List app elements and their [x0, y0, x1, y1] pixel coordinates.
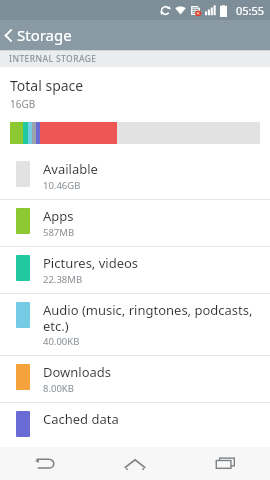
staticText: Cached data [43, 410, 119, 428]
button[interactable]: Pictures, videos [0, 247, 270, 293]
button[interactable]: Downloads [0, 356, 270, 402]
staticText: Storage [17, 25, 72, 45]
staticText: 22.38MB [43, 273, 83, 286]
button[interactable]: Home [90, 447, 180, 480]
staticText: Downloads [43, 363, 112, 381]
staticText: 40.00KB [43, 335, 80, 348]
staticText: Total space [10, 76, 84, 95]
staticText: Apps [43, 207, 74, 225]
button[interactable]: Total space [0, 67, 270, 111]
staticText: Pictures, videos [43, 254, 139, 272]
staticText: 8.00KB [43, 382, 74, 395]
staticText: Available [43, 160, 98, 178]
button[interactable]: Back [0, 25, 80, 45]
staticText: 16GB [10, 97, 36, 111]
staticText: INTERNAL STORAGE [9, 53, 97, 65]
staticText: 10.46GB [43, 179, 81, 192]
staticText: 587MB [43, 226, 75, 239]
staticText: 05:55 [236, 3, 265, 18]
button[interactable]: Audio (music, ringtones, podcasts, etc.) [0, 294, 270, 355]
button[interactable]: Recent apps [180, 447, 270, 480]
button[interactable]: Available [0, 153, 270, 199]
button[interactable]: Cached data [0, 403, 270, 444]
button[interactable]: Apps [0, 200, 270, 246]
button[interactable]: Back [0, 447, 90, 480]
staticText: Audio (music, ringtones, podcasts, etc.) [43, 301, 260, 334]
